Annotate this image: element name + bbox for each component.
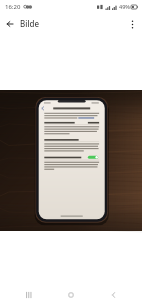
button[interactable]: Tilbake xyxy=(2,16,18,32)
button[interactable]: Hjem xyxy=(56,285,86,305)
button[interactable]: Tilbake xyxy=(99,285,129,305)
button[interactable]: Bilde av mobiltelefon xyxy=(0,90,142,231)
staticText: 49% xyxy=(119,3,130,10)
staticText: 16:20 xyxy=(5,3,21,11)
staticText: Bilde xyxy=(20,18,40,29)
button[interactable]: Oversikt xyxy=(13,285,43,305)
button[interactable]: Mer xyxy=(124,16,140,32)
